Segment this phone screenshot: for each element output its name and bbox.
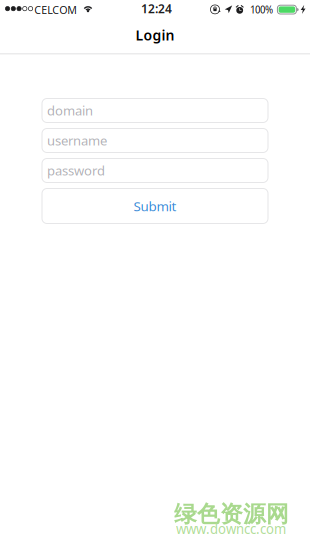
button[interactable]: username — [42, 128, 268, 152]
staticText: Login — [135, 25, 174, 45]
staticText: Submit — [133, 197, 176, 215]
staticText: password — [47, 162, 105, 179]
button[interactable]: password — [42, 158, 268, 182]
staticText: 100% — [250, 2, 273, 17]
staticText: www.downcc.com — [176, 520, 286, 538]
staticText: domain — [47, 102, 93, 119]
button[interactable]: Submit — [42, 188, 268, 223]
staticText: username — [47, 132, 107, 149]
staticText: CELCOM — [34, 3, 77, 17]
button[interactable]: domain — [42, 98, 268, 122]
staticText: 绿色资源网 — [174, 500, 289, 529]
staticText: 12:24 — [141, 0, 172, 17]
